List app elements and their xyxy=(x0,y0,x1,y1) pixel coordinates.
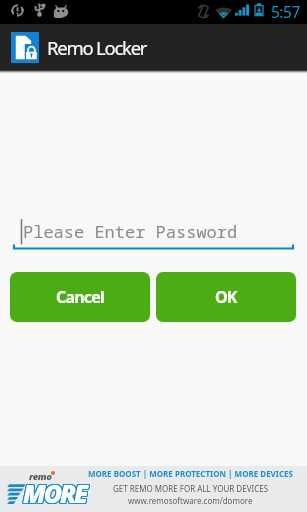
staticText: MORE xyxy=(23,475,87,509)
staticText: MORE xyxy=(23,475,87,509)
staticText: MORE xyxy=(24,475,88,509)
button[interactable]: Remo Locker app icon xyxy=(11,32,39,63)
staticText: MORE xyxy=(23,477,87,511)
staticText: MORE xyxy=(22,477,86,511)
staticText: MORE xyxy=(24,476,88,510)
staticText: MORE xyxy=(23,476,87,510)
staticText: MORE xyxy=(22,475,86,509)
staticText: OK xyxy=(215,286,237,308)
staticText: MORE xyxy=(22,476,86,510)
staticText: MORE xyxy=(22,477,86,511)
button[interactable]: OK xyxy=(156,272,296,322)
staticText: MORE xyxy=(22,475,86,509)
staticText: MORE xyxy=(23,476,87,510)
staticText: www.remosoftware.com/domore xyxy=(128,495,253,506)
staticText: MORE xyxy=(22,476,86,510)
staticText: MORE BOOST | MORE PROTECTION | MORE DEVI… xyxy=(88,468,293,479)
button[interactable]: Remo MORE advertisement xyxy=(0,466,307,512)
staticText: MORE xyxy=(22,475,86,509)
staticText: remo xyxy=(29,470,52,483)
staticText: Remo Locker xyxy=(47,35,147,60)
button[interactable]: Password input field xyxy=(0,217,307,251)
staticText: MORE xyxy=(24,475,88,509)
staticText: MORE xyxy=(24,477,88,511)
staticText: Cancel xyxy=(56,286,105,308)
staticText: MORE xyxy=(24,477,88,511)
staticText: MORE xyxy=(24,477,88,511)
staticText: Please Enter Password xyxy=(23,220,238,243)
staticText: MORE xyxy=(24,476,88,510)
staticText: 5:57 xyxy=(271,1,300,22)
staticText: MORE xyxy=(24,475,88,509)
staticText: MORE xyxy=(22,477,86,511)
staticText: GET REMO MORE FOR ALL YOUR DEVICES xyxy=(113,483,269,494)
button[interactable]: Cancel xyxy=(10,272,150,322)
staticText: MORE xyxy=(23,477,87,511)
